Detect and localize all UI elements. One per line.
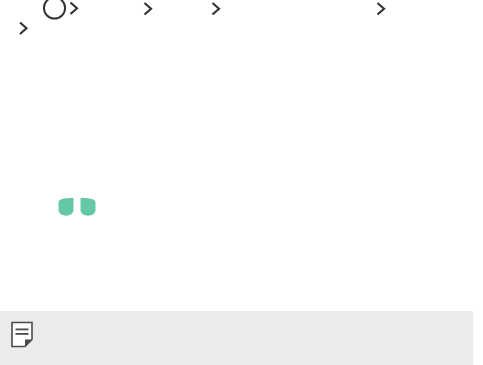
button[interactable]: Note	[11, 321, 35, 349]
button[interactable]: Breadcrumb separator	[371, 0, 393, 20]
button[interactable]: Breadcrumb separator	[206, 0, 228, 20]
button[interactable]: Breadcrumb separator	[14, 20, 36, 40]
button[interactable]: Breadcrumb separator	[138, 0, 160, 20]
button[interactable]: Home	[44, 0, 84, 20]
